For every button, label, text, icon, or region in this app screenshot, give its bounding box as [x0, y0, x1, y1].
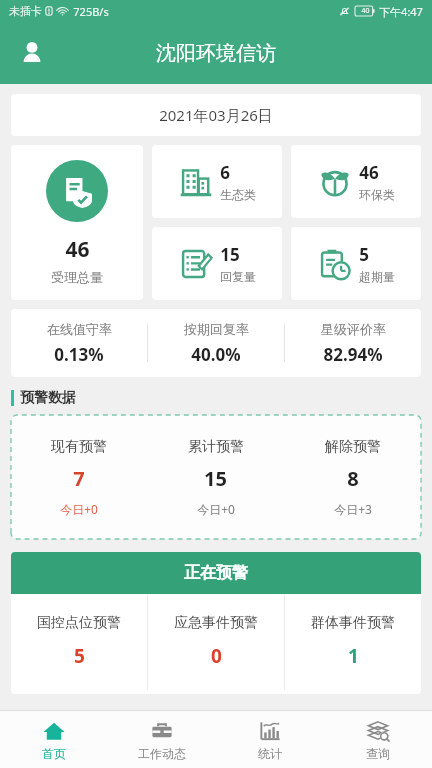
staticText: 环保类 [359, 187, 395, 202]
button[interactable]: 在线值守率 [11, 309, 147, 377]
button[interactable]: 解除预警 [284, 415, 421, 539]
staticText: 沈阳环境信访 [156, 41, 276, 66]
staticText: 工作动态 [138, 746, 186, 761]
button[interactable]: 工作动态 [108, 711, 216, 768]
staticText: 查询 [366, 746, 390, 761]
button[interactable]: 46 [291, 145, 421, 218]
staticText: 725B/s [73, 4, 109, 19]
button[interactable]: 群体事件预警 [285, 594, 421, 694]
staticText: 7 [73, 465, 85, 492]
button[interactable]: 正在预警 [11, 552, 421, 594]
button[interactable]: 现有预警 [11, 415, 147, 539]
staticText: 2021年03月26日 [159, 105, 273, 125]
staticText: 生态类 [220, 187, 256, 202]
staticText: 按期回复率 [184, 321, 249, 337]
staticText: 0 [211, 643, 222, 669]
button[interactable]: 15 [152, 227, 282, 300]
staticText: 回复量 [220, 269, 256, 284]
button[interactable]: 46 [11, 145, 143, 300]
staticText: 统计 [258, 746, 282, 761]
staticText: 首页 [42, 746, 66, 761]
button[interactable]: 国控点位预警 [11, 594, 147, 694]
button[interactable]: 6 [152, 145, 282, 218]
staticText: 解除预警 [325, 438, 381, 456]
staticText: 今日+0 [60, 501, 98, 517]
staticText: 下午4:47 [379, 4, 423, 19]
staticText: 0.13% [54, 343, 104, 366]
staticText: 1 [348, 643, 359, 669]
staticText: 在线值守率 [47, 321, 112, 337]
staticText: 5 [74, 643, 85, 669]
button[interactable]: 累计预警 [147, 415, 284, 539]
button[interactable]: 按期回复率 [148, 309, 284, 377]
staticText: 星级评价率 [321, 321, 386, 337]
button[interactable]: 统计 [216, 711, 324, 768]
staticText: 受理总量 [51, 269, 103, 285]
staticText: 国控点位预警 [37, 614, 121, 632]
staticText: 预警数据 [20, 389, 76, 407]
staticText: 5 [359, 243, 369, 266]
staticText: 82.94% [323, 343, 383, 366]
staticText: 下午4:47 [379, 4, 423, 19]
staticText: 40.0% [191, 343, 241, 366]
staticText: 正在预警 [184, 563, 248, 583]
staticText: 应急事件预警 [174, 614, 258, 632]
staticText: 群体事件预警 [311, 614, 395, 632]
staticText: 今日+0 [197, 501, 235, 517]
button[interactable]: 5 [291, 227, 421, 300]
staticText: 8 [347, 465, 359, 492]
staticText: 今日+3 [334, 501, 372, 517]
button[interactable]: 应急事件预警 [148, 594, 284, 694]
staticText: 超期量 [359, 269, 395, 284]
staticText: 现有预警 [51, 438, 107, 456]
button[interactable]: 星级评价率 [285, 309, 421, 377]
button[interactable]: 查询 [324, 711, 432, 768]
staticText: 46 [65, 235, 90, 264]
staticText: 未插卡 [9, 4, 42, 18]
button[interactable]: 首页 [0, 711, 108, 768]
staticText: 15 [220, 243, 240, 266]
staticText: 40 [361, 6, 370, 16]
staticText: 累计预警 [188, 438, 244, 456]
staticText: 6 [220, 161, 230, 184]
button[interactable]: 2021年03月26日 [11, 94, 421, 136]
staticText: 46 [359, 161, 379, 184]
button[interactable]: 个人中心 [10, 31, 54, 75]
staticText: 15 [204, 465, 227, 492]
